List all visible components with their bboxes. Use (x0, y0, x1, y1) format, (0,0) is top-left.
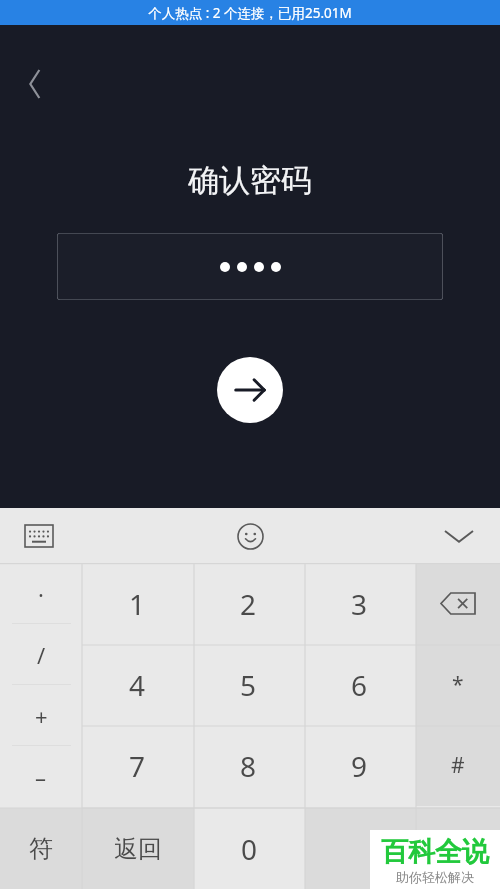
staticText: 8 (240, 747, 257, 785)
button[interactable]: Hide keyboard (434, 511, 484, 561)
button[interactable]: Backspace (416, 563, 500, 644)
button[interactable]: 8 (193, 725, 304, 806)
staticText: 7 (129, 747, 146, 785)
button[interactable]: 7 (82, 725, 193, 806)
staticText: 确认密码 (188, 161, 312, 200)
button[interactable]: 4 (82, 644, 193, 725)
button[interactable]: 2 (193, 563, 304, 644)
staticText: 2 (240, 585, 257, 623)
staticText: + (35, 701, 48, 731)
staticText: 6 (351, 666, 368, 704)
button[interactable]: * (416, 644, 500, 725)
button[interactable]: 1 (82, 563, 193, 644)
staticText: – (35, 762, 47, 792)
staticText: 返回 (114, 834, 162, 864)
button[interactable]: Confirm (217, 357, 283, 423)
staticText: · (38, 579, 44, 609)
button[interactable]: / (0, 624, 82, 685)
staticText: 符 (29, 834, 53, 864)
staticText: # (451, 751, 465, 780)
staticText: 百科全说 (381, 835, 489, 869)
staticText: 1 (129, 585, 146, 623)
staticText: 助你轻松解决 (396, 869, 474, 885)
staticText: 9 (351, 747, 368, 785)
button[interactable]: 符 (0, 808, 82, 889)
staticText: * (452, 670, 464, 699)
staticText: 0 (241, 830, 258, 868)
button[interactable]: 6 (304, 644, 415, 725)
button[interactable]: · (0, 563, 82, 624)
staticText: 个人热点 : 2 个连接，已用25.01M (148, 4, 352, 22)
staticText: 3 (351, 585, 368, 623)
button[interactable]: Space (305, 808, 500, 889)
button[interactable]: Emoji (226, 512, 274, 560)
button[interactable]: – (0, 746, 82, 807)
staticText: / (37, 640, 46, 670)
button[interactable] (57, 233, 443, 300)
button[interactable]: 3 (304, 563, 415, 644)
button[interactable]: 5 (193, 644, 304, 725)
button[interactable]: 返回 (82, 808, 194, 889)
button[interactable]: 9 (304, 725, 415, 806)
staticText: 4 (129, 666, 146, 704)
button[interactable]: + (0, 685, 82, 746)
button[interactable]: Keyboard layout (14, 508, 64, 563)
button[interactable]: # (416, 725, 500, 806)
staticText: 5 (240, 666, 257, 704)
button[interactable]: 0 (194, 808, 305, 889)
button[interactable]: Back (10, 61, 56, 107)
